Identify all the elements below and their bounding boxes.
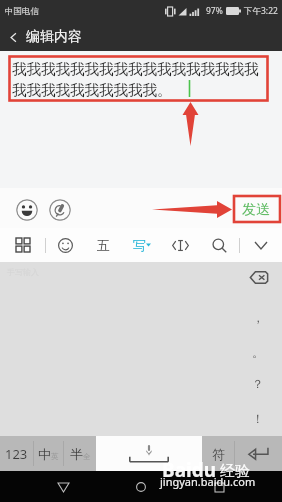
button[interactable]: ！ (244, 409, 272, 427)
staticText: 发送 (242, 201, 270, 219)
staticText: 123 (5, 445, 28, 463)
staticText: 编辑内容 (26, 28, 82, 46)
staticText: 中 (38, 446, 51, 462)
button[interactable]: 半 (64, 436, 96, 471)
button[interactable]: 五 (84, 228, 122, 262)
button[interactable]: 。 (244, 343, 272, 361)
button[interactable]: Move cursor (161, 228, 200, 262)
button[interactable]: ？ (244, 374, 272, 392)
staticText: 全 (83, 452, 91, 461)
button[interactable]: Enter (235, 436, 282, 471)
button[interactable]: Recent apps (204, 472, 234, 502)
staticText: ！ (252, 411, 264, 426)
button[interactable]: Keyboard layouts (0, 228, 45, 262)
button[interactable]: Space (96, 436, 202, 471)
staticText: 写 (133, 237, 146, 253)
staticText: 下午3:22 (244, 5, 278, 17)
button[interactable]: 符 (202, 436, 234, 471)
staticText: 我我我我我我我我我我我我我我我我我我我我我我我我我我我。 (12, 60, 268, 99)
staticText: Baidu (162, 457, 217, 483)
button[interactable]: 中 (34, 436, 63, 471)
button[interactable]: 写 (122, 228, 161, 262)
staticText: 97% (206, 5, 223, 17)
staticText: ？ (252, 376, 264, 391)
button[interactable]: Search (200, 228, 239, 262)
button[interactable]: Emoji (46, 228, 84, 262)
staticText: 半 (70, 446, 83, 462)
staticText: 中国电信 (5, 6, 39, 17)
staticText: 五 (97, 237, 110, 253)
staticText: 符 (212, 446, 225, 462)
staticText: jingyan.baidu.com (160, 474, 256, 489)
button[interactable]: Home (126, 472, 156, 502)
staticText: ， (252, 310, 264, 325)
button[interactable]: 123 (0, 436, 33, 471)
button[interactable]: Emoji (16, 199, 38, 221)
staticText: 英 (51, 452, 59, 461)
button[interactable]: Back (0, 24, 26, 50)
staticText: 。 (252, 345, 264, 360)
button[interactable]: 发送 (235, 198, 277, 222)
button[interactable]: Hide keyboard (240, 228, 282, 262)
button[interactable]: ， (244, 308, 272, 326)
button[interactable]: Back (48, 472, 78, 502)
button[interactable]: Voice input (49, 199, 71, 221)
staticText: 经验 (220, 462, 250, 481)
button[interactable]: Backspace (250, 271, 268, 284)
